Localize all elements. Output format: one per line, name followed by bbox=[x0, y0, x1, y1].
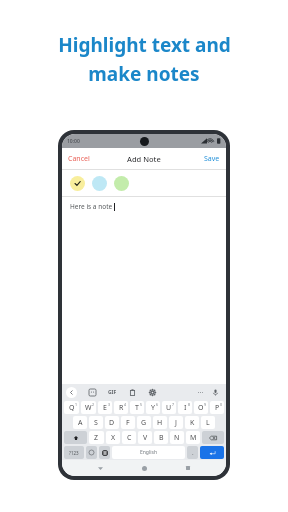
button[interactable]: R bbox=[114, 401, 128, 414]
button[interactable]: English bbox=[112, 446, 185, 459]
button[interactable]: B bbox=[154, 431, 168, 444]
button[interactable]: Shift bbox=[64, 431, 87, 444]
staticText: 5 bbox=[140, 402, 143, 407]
staticText: V bbox=[143, 433, 148, 443]
button[interactable]: K bbox=[185, 416, 199, 429]
staticText: M bbox=[190, 433, 197, 443]
button[interactable]: Enter bbox=[200, 446, 224, 459]
button[interactable]: T bbox=[130, 401, 144, 414]
button[interactable]: Here is a note bbox=[62, 197, 226, 384]
button[interactable]: Blue highlight bbox=[92, 176, 107, 191]
staticText: N bbox=[174, 433, 180, 443]
button[interactable]: H bbox=[153, 416, 167, 429]
button[interactable]: M bbox=[186, 431, 200, 444]
staticText: L bbox=[206, 418, 210, 428]
staticText: Highlight text and bbox=[58, 32, 231, 58]
staticText: P bbox=[215, 403, 220, 413]
button[interactable]: O bbox=[194, 401, 208, 414]
button[interactable]: J bbox=[169, 416, 183, 429]
button[interactable]: E bbox=[98, 401, 112, 414]
button[interactable]: L bbox=[201, 416, 215, 429]
staticText: . bbox=[192, 449, 194, 457]
button[interactable]: Save bbox=[198, 150, 226, 168]
button[interactable]: GIF bbox=[108, 389, 117, 396]
button[interactable]: Back bbox=[66, 387, 77, 398]
staticText: J bbox=[175, 418, 177, 428]
button[interactable]: Voice input bbox=[211, 388, 220, 397]
button[interactable]: Q bbox=[64, 401, 79, 414]
staticText: English bbox=[140, 449, 158, 456]
staticText: W bbox=[85, 403, 92, 413]
button[interactable]: V bbox=[138, 431, 152, 444]
staticText: Add Note bbox=[127, 154, 161, 164]
button[interactable]: Yellow highlight bbox=[70, 176, 85, 191]
staticText: Q bbox=[69, 403, 75, 413]
staticText: 9 bbox=[204, 402, 207, 407]
staticText: ?123 bbox=[69, 450, 79, 456]
staticText: 6 bbox=[156, 402, 159, 407]
button[interactable]: Y bbox=[146, 401, 160, 414]
button[interactable]: Home bbox=[138, 462, 150, 474]
button[interactable]: Clipboard bbox=[128, 388, 137, 397]
button[interactable]: . bbox=[187, 446, 198, 459]
button[interactable]: Green highlight bbox=[114, 176, 129, 191]
staticText: K bbox=[190, 418, 195, 428]
staticText: 2 bbox=[92, 402, 95, 407]
staticText: A bbox=[78, 418, 83, 428]
button[interactable]: Change language bbox=[99, 446, 110, 459]
button[interactable]: Z bbox=[89, 431, 104, 444]
button[interactable]: Stickers bbox=[88, 388, 97, 397]
button[interactable]: D bbox=[105, 416, 119, 429]
staticText: B bbox=[159, 433, 164, 443]
staticText: Save bbox=[204, 154, 220, 164]
staticText: S bbox=[94, 418, 98, 428]
staticText: 10:00 bbox=[67, 138, 80, 145]
staticText: R bbox=[119, 403, 124, 413]
staticText: Cancel bbox=[68, 154, 90, 164]
staticText: GIF bbox=[108, 389, 117, 396]
staticText: E bbox=[103, 403, 107, 413]
staticText: D bbox=[109, 418, 115, 428]
staticText: 0 bbox=[220, 402, 223, 407]
staticText: X bbox=[111, 433, 116, 443]
button[interactable]: Settings bbox=[148, 388, 157, 397]
staticText: Here is a note bbox=[70, 202, 113, 211]
staticText: Y bbox=[151, 403, 155, 413]
button[interactable]: U bbox=[162, 401, 176, 414]
button[interactable]: F bbox=[121, 416, 135, 429]
staticText: U bbox=[166, 403, 172, 413]
staticText: G bbox=[141, 418, 147, 428]
button[interactable]: Cancel bbox=[62, 150, 96, 168]
staticText: 3 bbox=[108, 402, 111, 407]
staticText: H bbox=[157, 418, 163, 428]
button[interactable]: A bbox=[73, 416, 87, 429]
button[interactable]: Backspace bbox=[202, 431, 224, 444]
staticText: C bbox=[127, 433, 132, 443]
staticText: F bbox=[126, 418, 130, 428]
staticText: T bbox=[135, 403, 139, 413]
button[interactable]: More bbox=[196, 388, 205, 397]
staticText: Z bbox=[94, 433, 99, 443]
staticText: 7 bbox=[172, 402, 175, 407]
button[interactable]: P bbox=[210, 401, 224, 414]
button[interactable]: Emoji bbox=[86, 446, 97, 459]
button[interactable]: N bbox=[170, 431, 184, 444]
staticText: I bbox=[184, 403, 187, 413]
button[interactable]: X bbox=[106, 431, 120, 444]
staticText: 4 bbox=[124, 402, 127, 407]
button[interactable]: Back bbox=[94, 462, 106, 474]
button[interactable]: W bbox=[81, 401, 96, 414]
staticText: 8 bbox=[188, 402, 191, 407]
staticText: 1 bbox=[75, 402, 78, 407]
button[interactable]: S bbox=[89, 416, 103, 429]
button[interactable]: C bbox=[122, 431, 136, 444]
button[interactable]: ?123 bbox=[64, 446, 84, 459]
button[interactable]: I bbox=[178, 401, 192, 414]
staticText: make notes bbox=[88, 61, 200, 87]
button[interactable]: Recent apps bbox=[182, 462, 194, 474]
button[interactable]: G bbox=[137, 416, 151, 429]
staticText: O bbox=[198, 403, 204, 413]
